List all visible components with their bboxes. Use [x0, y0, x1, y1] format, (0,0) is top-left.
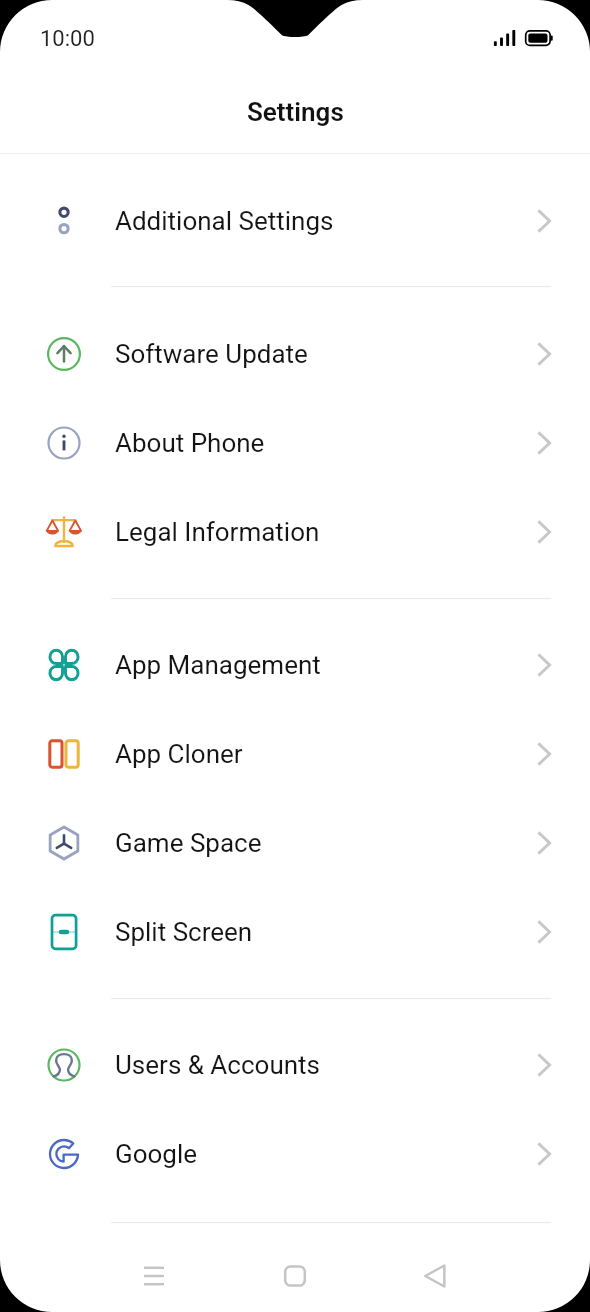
- button[interactable]: Software Update: [0, 309, 590, 398]
- staticText: Additional Settings: [115, 206, 334, 236]
- staticText: Software Update: [115, 339, 308, 369]
- staticText: App Cloner: [115, 739, 243, 769]
- button[interactable]: Additional Settings: [0, 176, 590, 265]
- button[interactable]: About Phone: [0, 398, 590, 487]
- button[interactable]: Game Space: [0, 798, 590, 887]
- button[interactable]: Split Screen: [0, 887, 590, 976]
- button[interactable]: App Cloner: [0, 709, 590, 798]
- button[interactable]: Users & Accounts: [0, 1020, 590, 1109]
- button[interactable]: Home: [265, 1246, 325, 1306]
- button[interactable]: Recent apps: [124, 1246, 184, 1306]
- button[interactable]: Google: [0, 1109, 590, 1198]
- staticText: Split Screen: [115, 917, 253, 947]
- staticText: Legal Information: [115, 517, 320, 547]
- button[interactable]: Back: [405, 1246, 465, 1306]
- staticText: Google: [115, 1139, 198, 1169]
- staticText: About Phone: [115, 428, 265, 458]
- staticText: Users & Accounts: [115, 1050, 320, 1080]
- button[interactable]: App Management: [0, 620, 590, 709]
- staticText: App Management: [115, 650, 321, 680]
- staticText: Settings: [247, 97, 344, 127]
- button[interactable]: Legal Information: [0, 487, 590, 576]
- staticText: 10:00: [40, 26, 95, 52]
- staticText: Game Space: [115, 828, 262, 858]
